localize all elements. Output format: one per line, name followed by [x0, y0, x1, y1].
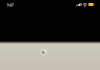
staticText: 9:47	[6, 2, 13, 7]
button[interactable]: Marker	[40, 48, 47, 56]
